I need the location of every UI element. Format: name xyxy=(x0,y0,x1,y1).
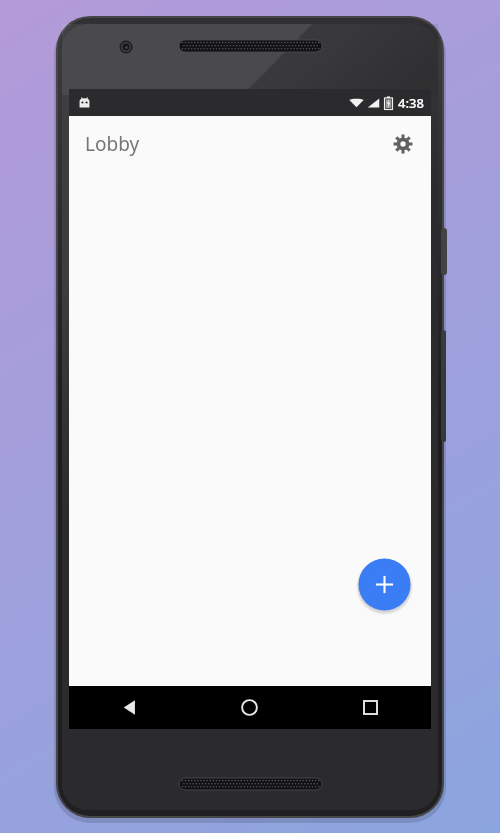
button[interactable]: Back xyxy=(69,686,189,729)
staticText: Lobby xyxy=(85,131,140,157)
button[interactable]: Settings xyxy=(383,124,423,164)
button[interactable]: Add xyxy=(357,557,412,612)
button[interactable]: Recent apps xyxy=(310,686,431,729)
button[interactable]: Home xyxy=(189,686,310,729)
staticText: 4:38 xyxy=(398,94,424,112)
